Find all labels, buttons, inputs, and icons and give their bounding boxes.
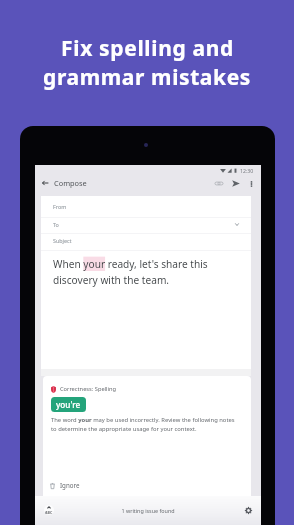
staticText: Ignore (60, 481, 80, 489)
button[interactable]: Keyboard (43, 504, 55, 516)
staticText: grammar mistakes (43, 63, 251, 92)
button[interactable]: Back (38, 176, 52, 190)
staticText: Compose (54, 178, 87, 188)
staticText: Subject (53, 237, 72, 244)
staticText: To (53, 221, 59, 228)
staticText: ABC (45, 510, 53, 515)
button[interactable]: More options (246, 178, 257, 189)
staticText: Correctness: Spelling (60, 385, 117, 393)
button[interactable]: Settings (243, 505, 254, 516)
staticText: Fix spelling and (61, 34, 234, 63)
button[interactable]: Send (229, 176, 243, 190)
staticText: The word your may be used incorrectly. R… (51, 416, 240, 433)
staticText: When your ready, let's share this discov… (53, 257, 213, 287)
staticText: 1 writing issue found (35, 507, 261, 514)
staticText: From (53, 203, 67, 210)
button[interactable]: Attach file (212, 176, 226, 190)
button[interactable]: Ignore (48, 480, 82, 492)
button[interactable]: you're (51, 397, 86, 412)
staticText: you're (56, 399, 81, 410)
staticText: 12:30 (240, 167, 254, 174)
